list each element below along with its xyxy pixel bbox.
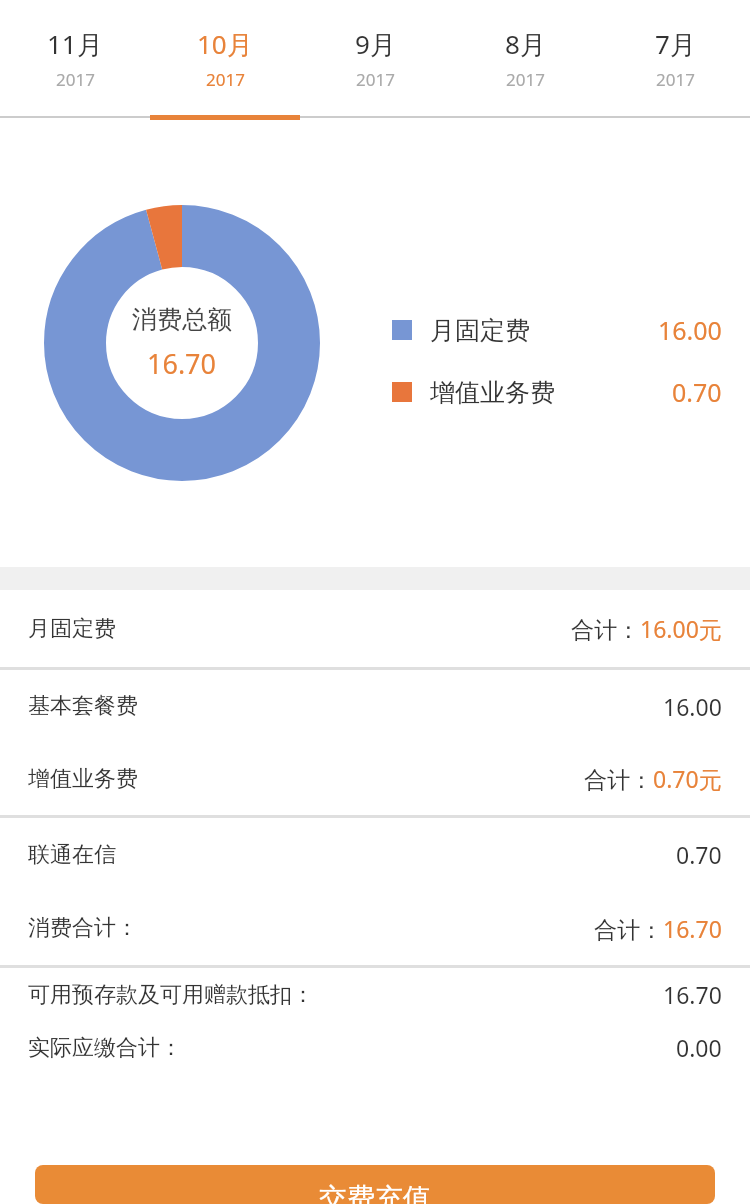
button[interactable]: 8月	[450, 0, 600, 117]
button[interactable]: 实际应缴合计：	[0, 1021, 750, 1074]
button[interactable]: 基本套餐费	[0, 670, 750, 742]
staticText: 交费充值	[319, 1181, 431, 1204]
staticText: 增值业务费	[28, 765, 138, 793]
staticText: 合计：16.00元	[571, 613, 722, 644]
staticText: 16.00	[658, 313, 722, 347]
button[interactable]: 11月	[0, 0, 150, 117]
button[interactable]: 可用预存款及可用赠款抵扣：	[0, 968, 750, 1021]
staticText: 联通在信	[28, 841, 116, 869]
staticText: 实际应缴合计：	[28, 1034, 182, 1062]
staticText: 基本套餐费	[28, 692, 138, 720]
staticText: 0.70	[672, 375, 722, 409]
staticText: 16.70	[663, 979, 722, 1010]
staticText: 8月	[505, 26, 546, 62]
staticText: 合计：0.70元	[584, 763, 722, 794]
staticText: 9月	[355, 26, 396, 62]
button[interactable]: 7月	[600, 0, 750, 117]
button[interactable]: 增值业务费	[0, 742, 750, 815]
staticText: 0.70	[676, 839, 722, 870]
staticText: 10月	[197, 26, 253, 62]
staticText: 可用预存款及可用赠款抵扣：	[28, 981, 314, 1009]
staticText: 月固定费	[430, 315, 530, 346]
staticText: 合计：16.70	[594, 913, 722, 944]
staticText: 2017	[56, 68, 95, 91]
staticText: 2017	[206, 68, 245, 91]
staticText: 消费总额	[132, 304, 232, 335]
staticText: 16.00	[663, 691, 722, 722]
staticText: 增值业务费	[430, 377, 555, 408]
staticText: 0.00	[676, 1032, 722, 1063]
button[interactable]: 10月	[150, 0, 300, 117]
staticText: 2017	[506, 68, 545, 91]
staticText: 16.70	[147, 345, 217, 382]
staticText: 2017	[656, 68, 695, 91]
staticText: 月固定费	[28, 615, 116, 643]
button[interactable]: 交费充值	[35, 1165, 715, 1204]
staticText: 消费合计：	[28, 914, 138, 942]
button[interactable]: 增值业务费	[392, 375, 722, 409]
button[interactable]: 消费合计：	[0, 891, 750, 965]
staticText: 11月	[47, 26, 103, 62]
staticText: 7月	[655, 26, 696, 62]
staticText: 2017	[356, 68, 395, 91]
button[interactable]: 联通在信	[0, 818, 750, 891]
button[interactable]: 9月	[300, 0, 450, 117]
button[interactable]: 月固定费	[392, 313, 722, 347]
button[interactable]: 月固定费	[0, 590, 750, 667]
